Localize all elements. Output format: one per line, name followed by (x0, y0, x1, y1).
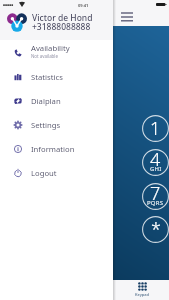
button[interactable]: Open navigation menu (118, 7, 136, 25)
button[interactable]: 7 (142, 183, 169, 210)
button[interactable]: Dialplan (0, 89, 113, 113)
staticText: Information (31, 144, 75, 154)
button[interactable]: * (142, 216, 169, 243)
staticText: Dialplan (31, 96, 61, 106)
staticText: Statistics (31, 72, 63, 82)
staticText: Settings (31, 120, 61, 130)
staticText: 4 (150, 147, 161, 172)
button[interactable]: Keypad (131, 282, 153, 297)
button[interactable]: 4 (142, 149, 169, 176)
staticText: PQRS (147, 199, 164, 207)
button[interactable]: Availability (0, 41, 113, 65)
staticText: Availability (31, 43, 70, 53)
staticText: 1 (150, 116, 161, 141)
staticText: * (151, 217, 161, 242)
button[interactable]: Statistics (0, 65, 113, 89)
staticText: 09:41 (78, 3, 89, 8)
staticText: Victor de Hond +31888088888 (32, 12, 93, 32)
button[interactable]: Information (0, 137, 113, 161)
staticText: Not available (31, 53, 58, 59)
button[interactable]: 1 (142, 115, 169, 142)
staticText: 7 (150, 181, 161, 206)
staticText: Keypad (135, 292, 150, 297)
staticText: GHI (150, 165, 162, 173)
staticText: Logout (31, 168, 57, 178)
button[interactable]: Settings (0, 113, 113, 137)
button[interactable]: Logout (0, 161, 113, 185)
